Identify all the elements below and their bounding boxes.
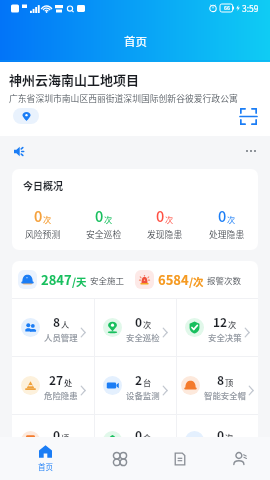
button[interactable]: 12 bbox=[177, 299, 258, 356]
staticText: 报警次数 bbox=[207, 274, 242, 286]
staticText: 66 bbox=[224, 4, 230, 12]
staticText: 27 bbox=[49, 371, 64, 388]
staticText: 神州云海南山工地项目 bbox=[9, 70, 140, 89]
staticText: 处理隐患 bbox=[209, 228, 245, 241]
staticText: 处 bbox=[64, 376, 73, 388]
button[interactable]: 首页 bbox=[15, 437, 75, 480]
button[interactable]: 0 bbox=[12, 415, 94, 466]
staticText: 安全培训 bbox=[44, 444, 78, 456]
button[interactable]: 0 bbox=[12, 205, 73, 241]
button[interactable]: 0 bbox=[196, 205, 258, 241]
button[interactable]: 定位 bbox=[13, 108, 39, 124]
staticText: 次 bbox=[228, 318, 237, 330]
button[interactable]: 0 bbox=[177, 415, 258, 466]
staticText: 0 bbox=[135, 313, 143, 330]
staticText: /天 bbox=[72, 274, 87, 289]
staticText: 首页 bbox=[38, 461, 53, 472]
staticText: 安全决策 bbox=[208, 331, 242, 343]
staticText: 危险隐患 bbox=[44, 389, 78, 401]
staticText: 0 bbox=[53, 426, 61, 443]
staticText: 次 bbox=[104, 213, 113, 225]
staticText: 次 bbox=[143, 318, 152, 330]
staticText: 12 bbox=[213, 313, 228, 330]
staticText: 0 bbox=[135, 426, 143, 443]
button[interactable]: 0 bbox=[73, 205, 134, 241]
button[interactable]: 我的 bbox=[210, 437, 270, 480]
staticText: 台 bbox=[143, 376, 152, 388]
staticText: 人员管理 bbox=[44, 331, 78, 343]
staticText: 人 bbox=[61, 318, 70, 330]
staticText: 首页 bbox=[124, 33, 147, 50]
staticText: 广东省深圳市南山区西丽街道深圳国际创新谷彼爱行政公寓 bbox=[9, 92, 238, 105]
staticText: 发现隐患 bbox=[147, 228, 183, 241]
staticText: 风险预测 bbox=[25, 228, 61, 241]
button[interactable]: 8 bbox=[177, 357, 258, 414]
staticText: 3:59 bbox=[242, 2, 259, 14]
staticText: 安全施工 bbox=[90, 274, 125, 286]
staticText: 设备监测 bbox=[126, 389, 160, 401]
button[interactable]: 8 bbox=[12, 299, 94, 356]
staticText: 智能安全帽 bbox=[204, 389, 246, 401]
staticText: 个 bbox=[143, 431, 152, 443]
button[interactable]: 应用 bbox=[90, 437, 150, 480]
staticText: 安全巡检 bbox=[126, 331, 160, 343]
staticText: 视频监控 bbox=[208, 444, 242, 456]
staticText: /次 bbox=[189, 274, 204, 289]
staticText: 2847 bbox=[41, 270, 72, 289]
staticText: 次 bbox=[227, 213, 236, 225]
staticText: 0 bbox=[217, 426, 225, 443]
staticText: 0 bbox=[156, 205, 165, 226]
button[interactable]: 2 bbox=[95, 357, 176, 414]
staticText: 项 bbox=[61, 431, 70, 443]
staticText: 0 bbox=[95, 205, 104, 226]
button[interactable]: 更多 bbox=[0, 137, 270, 164]
button[interactable]: 0 bbox=[95, 299, 176, 356]
staticText: 0 bbox=[218, 205, 227, 226]
staticText: 顶 bbox=[225, 376, 234, 388]
staticText: 2 bbox=[135, 371, 143, 388]
staticText: 8 bbox=[217, 371, 225, 388]
staticText: 6584 bbox=[158, 270, 189, 289]
staticText: 今日概况 bbox=[23, 178, 63, 192]
button[interactable]: 0 bbox=[95, 415, 176, 466]
button[interactable]: 27 bbox=[12, 357, 94, 414]
staticText: 次 bbox=[225, 431, 234, 443]
button[interactable]: 扫一扫 bbox=[238, 106, 258, 126]
button[interactable]: 文档 bbox=[150, 437, 210, 480]
staticText: 8 bbox=[53, 313, 61, 330]
staticText: 安全巡检 bbox=[86, 228, 122, 241]
button[interactable]: 更多 bbox=[244, 148, 258, 154]
staticText: 次 bbox=[43, 213, 52, 225]
button[interactable]: 0 bbox=[134, 205, 196, 241]
staticText: 次 bbox=[165, 213, 174, 225]
other: 概览 bbox=[12, 261, 258, 466]
staticText: 环境监测 bbox=[126, 444, 160, 456]
staticText: 0 bbox=[34, 205, 43, 226]
